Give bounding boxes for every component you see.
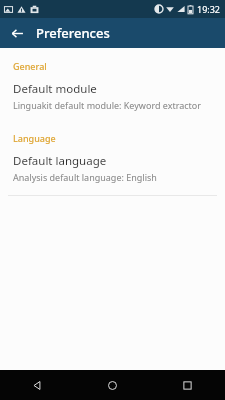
button[interactable]: Default module <box>0 72 225 114</box>
button[interactable]: Back <box>0 370 75 400</box>
staticText: Analysis default language: English <box>13 171 157 183</box>
button[interactable]: Home <box>75 370 150 400</box>
button[interactable]: Default language <box>0 144 225 186</box>
button[interactable]: Recent apps <box>150 370 225 400</box>
staticText: Preferences <box>36 24 110 42</box>
staticText: Linguakit default module: Keyword extrac… <box>13 99 202 111</box>
staticText: Default module <box>13 81 97 97</box>
staticText: General <box>13 60 47 72</box>
button[interactable]: Back <box>6 22 28 44</box>
staticText: 19:32 <box>197 3 221 15</box>
staticText: Default language <box>13 153 107 169</box>
staticText: Language <box>13 132 56 144</box>
